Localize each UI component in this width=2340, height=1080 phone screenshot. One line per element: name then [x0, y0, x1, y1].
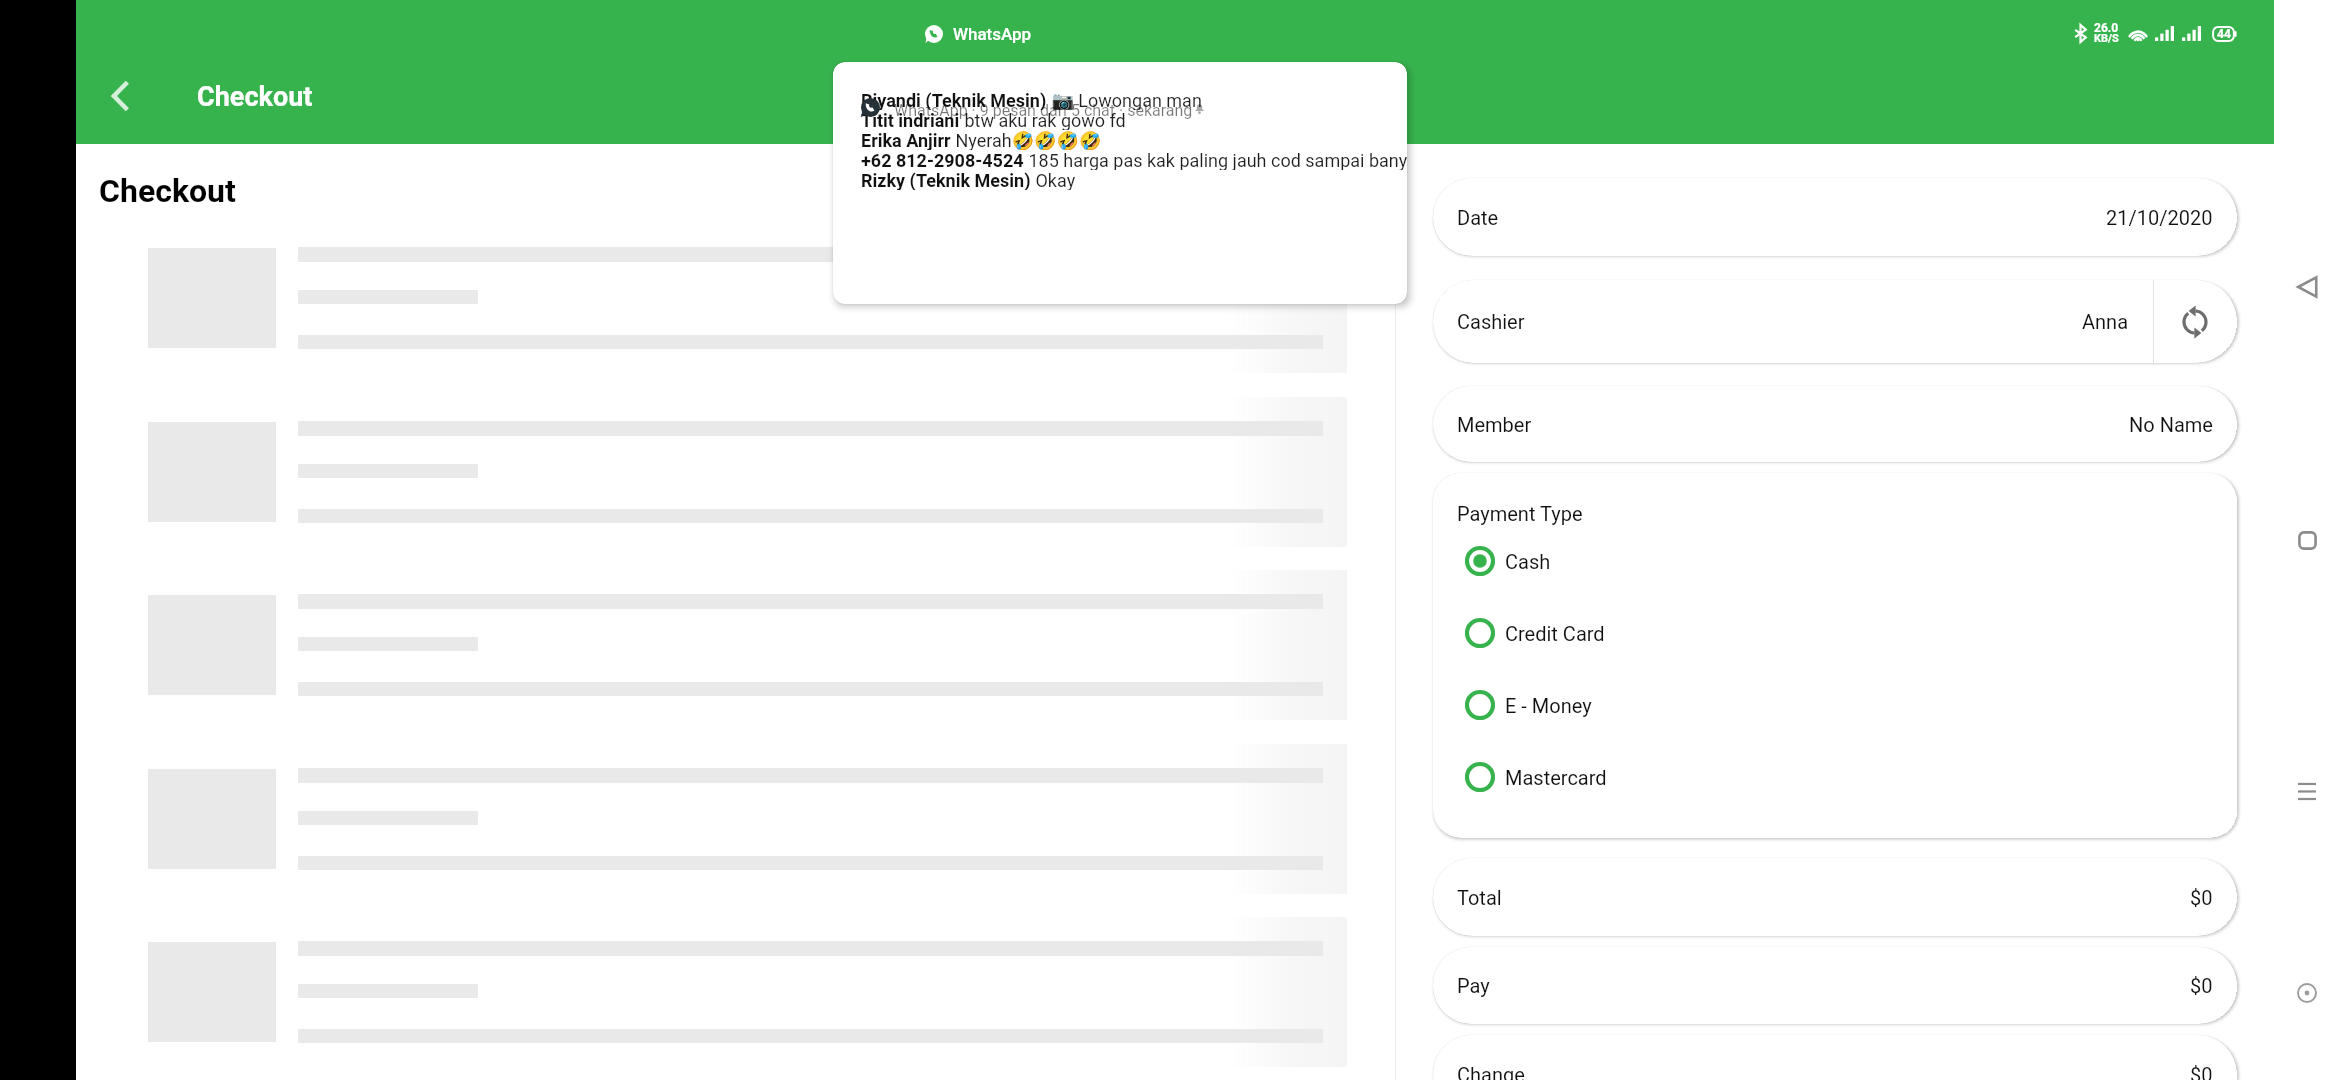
staticText: Okay: [1031, 170, 1076, 190]
button[interactable]: Screen recorder: [2287, 973, 2327, 1013]
staticText: Change: [1457, 1063, 1525, 1080]
button[interactable]: Recent apps: [2287, 771, 2327, 811]
button[interactable]: Credit Card: [1463, 611, 1605, 655]
button[interactable]: Change cashier: [2153, 280, 2237, 363]
button[interactable]: Pay: [1433, 947, 2237, 1024]
staticText: Cashier: [1457, 310, 1525, 333]
staticText: btw aku rak gowo fd: [960, 110, 1126, 130]
staticText: WhatsApp: [953, 24, 1032, 44]
button[interactable]: Member: [1433, 386, 2237, 462]
staticText: Checkout: [99, 172, 236, 210]
staticText: Credit Card: [1505, 622, 1605, 645]
button[interactable]: Cash: [1463, 539, 1551, 583]
staticText: No Name: [2129, 413, 2213, 436]
staticText: $0: [2190, 1063, 2213, 1080]
button[interactable]: Riyandi (Teknik Mesin): [833, 62, 1407, 304]
staticText: KB/S: [2094, 32, 2119, 45]
button[interactable]: Date: [1433, 178, 2237, 256]
staticText: Mastercard: [1505, 766, 1607, 789]
staticText: 21/10/2020: [2106, 206, 2213, 229]
staticText: Erika Anjirr: [861, 130, 951, 150]
staticText: $0: [2190, 974, 2213, 997]
button[interactable]: Total: [1433, 858, 2237, 936]
staticText: Member: [1457, 413, 1532, 436]
button[interactable]: Navigate back: [88, 64, 152, 128]
staticText: Cash: [1505, 550, 1551, 573]
staticText: Rizky (Teknik Mesin): [861, 170, 1031, 190]
button[interactable]: WhatsApp: [925, 24, 1032, 44]
staticText: WhatsApp · 9 pesan dari 5 chat · sekaran…: [894, 101, 1193, 120]
staticText: Titit indriani: [861, 110, 960, 130]
staticText: +62 812-2908-4524: [861, 150, 1024, 170]
staticText: Checkout: [197, 81, 313, 113]
button[interactable]: E - Money: [1463, 683, 1592, 727]
staticText: Riyandi (Teknik Mesin): [861, 90, 1047, 110]
staticText: E - Money: [1505, 694, 1592, 717]
staticText: Total: [1457, 886, 1502, 909]
button[interactable]: Home: [2287, 520, 2327, 560]
staticText: $0: [2190, 886, 2213, 909]
staticText: Date: [1457, 206, 1499, 229]
button[interactable]: Mastercard: [1463, 755, 1607, 799]
button[interactable]: Back: [2287, 267, 2327, 307]
staticText: 📷 Lowongan man: [1047, 90, 1202, 110]
button[interactable]: Change: [1433, 1035, 2237, 1080]
staticText: 26.0: [2094, 21, 2119, 35]
staticText: Payment Type: [1457, 502, 1583, 525]
staticText: Pay: [1457, 974, 1490, 997]
staticText: Anna: [2082, 310, 2129, 333]
button[interactable]: [1433, 280, 2153, 363]
staticText: 44: [2217, 27, 2231, 41]
staticText: 185 harga pas kak paling jauh cod sampai…: [1024, 150, 1407, 170]
staticText: Nyerah🤣🤣🤣🤣: [951, 130, 1102, 150]
